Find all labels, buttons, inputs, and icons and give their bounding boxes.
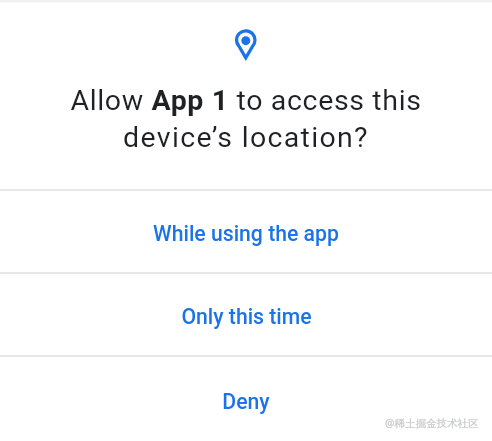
staticText: Only this time [181,304,312,329]
staticText: Allow App 1 to access this device’s loca… [0,84,492,154]
button[interactable]: Deny [0,357,492,441]
staticText: @稀土掘金技术社区 [385,416,479,430]
button[interactable]: While using the app [0,191,492,272]
staticText: Deny [222,389,270,414]
staticText: While using the app [153,221,339,246]
button[interactable]: Only this time [0,274,492,355]
